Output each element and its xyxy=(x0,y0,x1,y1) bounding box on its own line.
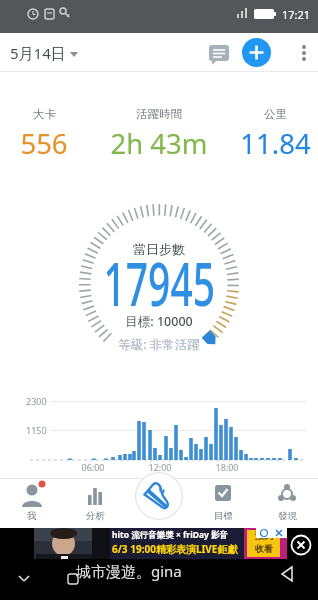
staticText: 6/3 19:00精彩表演LIVE鉅獻 xyxy=(112,542,238,556)
staticText: 分析 xyxy=(86,510,105,522)
staticText: 預約 xyxy=(255,530,273,541)
staticText: 18:00 xyxy=(215,461,239,473)
staticText: 17:21 xyxy=(282,7,311,22)
staticText: 城市漫遊。gina xyxy=(76,561,182,581)
button[interactable]: 我 xyxy=(6,480,58,526)
button[interactable] xyxy=(290,534,312,556)
button[interactable]: 分析 xyxy=(69,480,121,526)
staticText: 17945 xyxy=(104,243,215,323)
staticText: 我 xyxy=(27,510,37,522)
staticText: 大卡 xyxy=(33,107,56,121)
button[interactable] xyxy=(135,472,183,520)
button[interactable]: hito 流行音樂獎 × friDay 影音 xyxy=(34,528,287,559)
staticText: 12:00 xyxy=(148,461,172,473)
staticText: 收看 xyxy=(255,543,273,554)
staticText: 2300 xyxy=(26,395,47,407)
button[interactable] xyxy=(202,39,236,69)
button[interactable]: 5月14日 xyxy=(10,33,82,72)
button[interactable] xyxy=(292,38,316,68)
staticText: 5月14日 xyxy=(10,43,66,63)
staticText: 等級: 非常活躍 xyxy=(118,336,200,353)
staticText: 556 xyxy=(20,125,68,162)
button[interactable]: 發現 xyxy=(261,480,313,526)
staticText: 1150 xyxy=(26,424,47,436)
button[interactable] xyxy=(242,38,271,67)
button[interactable] xyxy=(276,564,300,586)
staticText: 11.84 xyxy=(240,125,311,162)
button[interactable]: 目標 xyxy=(197,480,249,526)
staticText: 目標 xyxy=(214,510,233,522)
staticText: hito 流行音樂獎 × friDay 影音 xyxy=(112,529,229,541)
staticText: 活躍時間 xyxy=(136,107,182,121)
staticText: 公里 xyxy=(264,107,287,121)
staticText: 2h 43m xyxy=(110,125,208,162)
staticText: 目標: 10000 xyxy=(125,313,193,330)
staticText: 06:00 xyxy=(81,461,105,473)
staticText: 當日步數 xyxy=(133,241,185,257)
staticText: 發現 xyxy=(278,510,297,522)
